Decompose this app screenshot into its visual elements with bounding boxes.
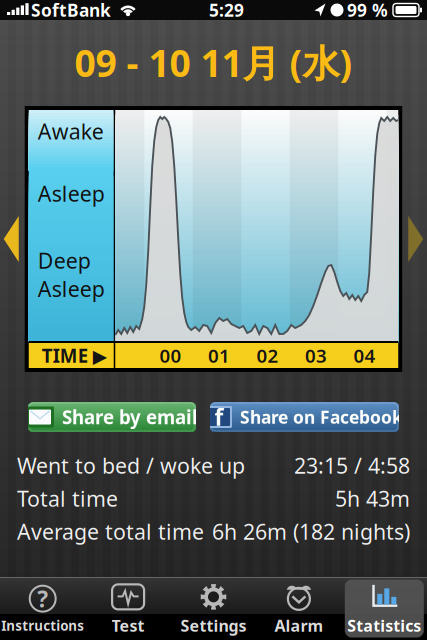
staticText: 99 % <box>347 0 388 21</box>
button[interactable]: Test <box>85 577 171 640</box>
staticText: Asleep <box>38 179 105 208</box>
staticText: TIME ▶ <box>42 343 107 368</box>
staticText: Statistics <box>347 615 421 636</box>
staticText: Total time <box>17 484 118 513</box>
staticText: Share on Facebook <box>240 405 403 428</box>
staticText: Deep <box>38 246 91 275</box>
button[interactable]: Settings <box>171 577 256 640</box>
staticText: 02 <box>256 343 278 368</box>
staticText: 5h 43m <box>335 484 410 513</box>
staticText: Awake <box>38 117 104 145</box>
staticText: ? <box>37 584 48 614</box>
button[interactable]: ? <box>0 577 85 640</box>
staticText: Went to bed / woke up <box>17 451 245 480</box>
button[interactable]: Next night <box>402 214 427 264</box>
staticText: 6h 26m (182 nights) <box>212 517 410 546</box>
staticText: 09 - 10 11月 (水) <box>74 38 352 87</box>
staticText: SoftBank <box>31 0 111 21</box>
staticText: Average total time <box>17 517 204 546</box>
staticText: Settings <box>180 615 246 636</box>
staticText: Instructions <box>1 617 84 634</box>
staticText: 04 <box>353 343 375 368</box>
staticText: Share by email <box>62 405 198 429</box>
staticText: Test <box>112 615 145 636</box>
button[interactable]: Share by email <box>28 402 196 432</box>
staticText: 00 <box>159 343 181 368</box>
staticText: Alarm <box>274 615 323 636</box>
staticText: 01 <box>208 343 230 368</box>
staticText: 03 <box>305 343 327 368</box>
button[interactable]: Alarm <box>256 577 342 640</box>
button[interactable]: f <box>210 402 399 432</box>
staticText: 23:15 / 4:58 <box>294 451 410 480</box>
staticText: 5:29 <box>209 0 244 21</box>
button[interactable]: Statistics <box>342 577 427 640</box>
staticText: f <box>214 402 223 432</box>
staticText: Asleep <box>38 275 105 303</box>
button[interactable]: Previous night <box>0 214 25 264</box>
